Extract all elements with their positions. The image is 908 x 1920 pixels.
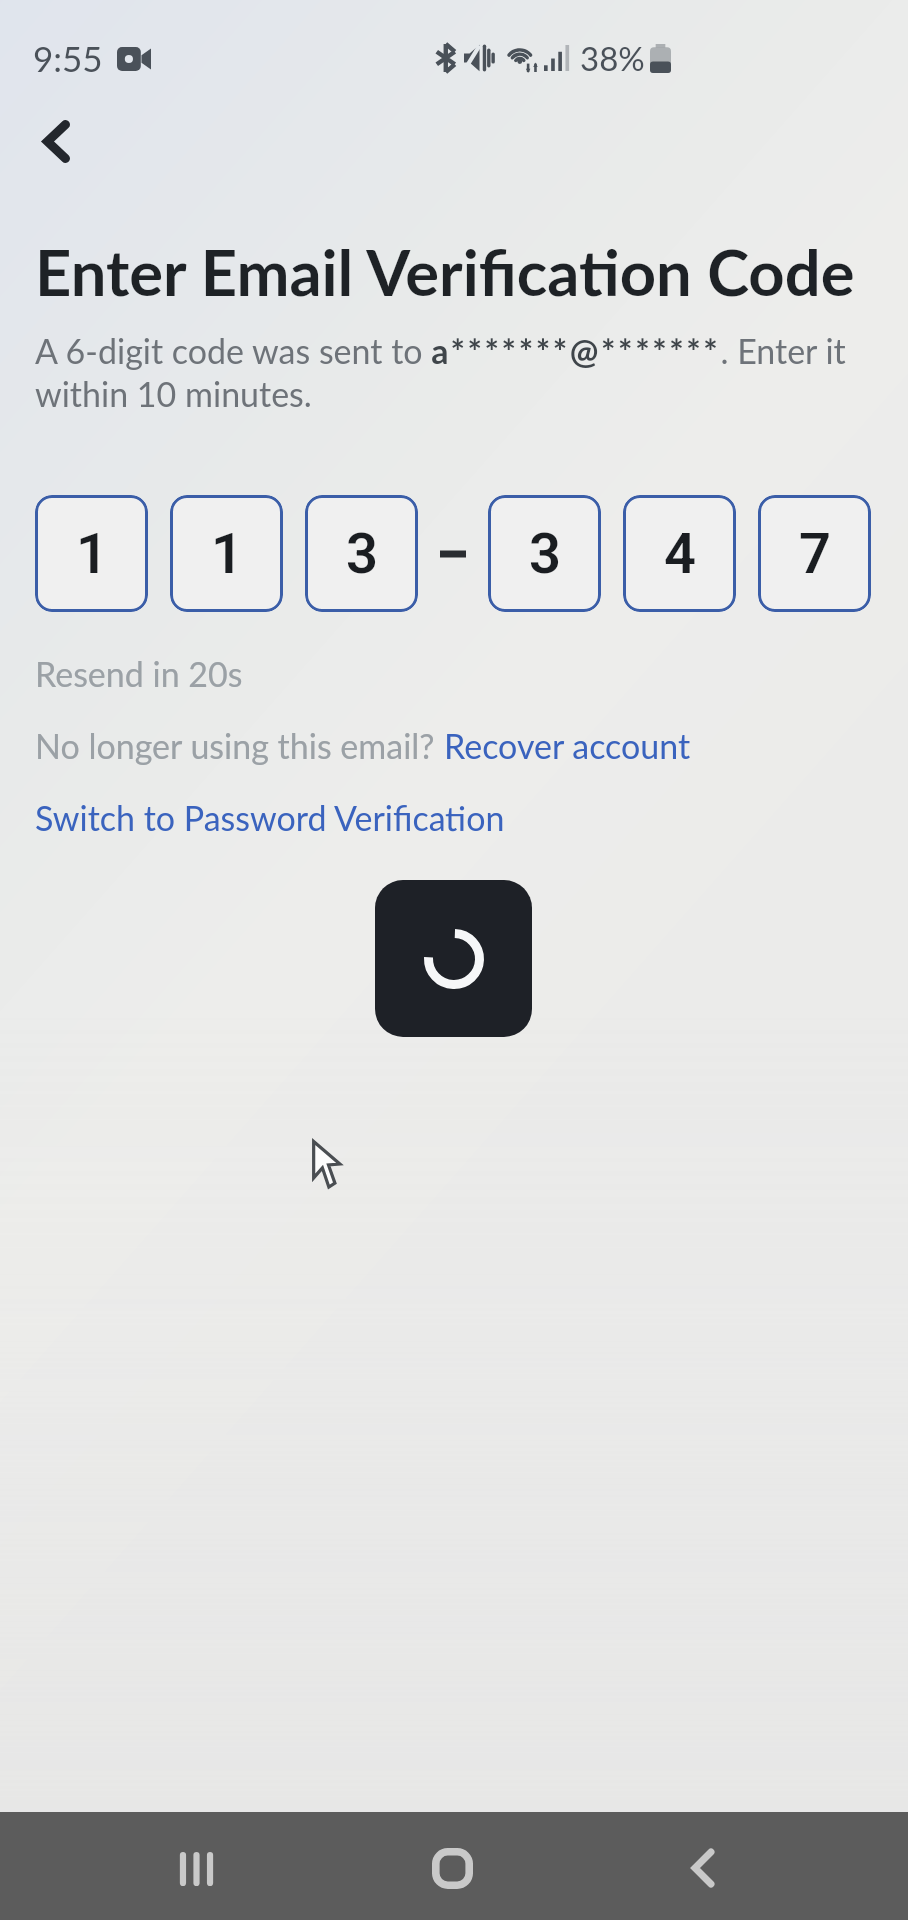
button[interactable]: 4 [623, 495, 736, 612]
button[interactable]: 7 [758, 495, 871, 612]
button[interactable]: 1 [170, 495, 283, 612]
staticText: A 6-digit code was sent to a*******@****… [35, 330, 875, 414]
staticText: Resend in 20s [35, 653, 243, 694]
button[interactable]: Home [397, 1814, 507, 1920]
staticText: 38% [580, 38, 645, 78]
button[interactable]: Back [20, 105, 92, 177]
staticText: Switch to Password Verification [35, 797, 505, 838]
staticText: 4 [664, 521, 696, 587]
staticText: Recover account [444, 725, 691, 766]
button[interactable]: Recents [141, 1815, 251, 1920]
staticText: 3 [346, 521, 378, 587]
staticText: 3 [529, 521, 561, 587]
button[interactable]: Back [648, 1814, 758, 1920]
button[interactable]: Switch to Password Verification [35, 797, 505, 838]
button[interactable]: 1 [35, 495, 148, 612]
staticText: 7 [799, 521, 831, 587]
staticText: 9:55 [33, 37, 103, 79]
button[interactable]: 3 [488, 495, 601, 612]
staticText: 1 [211, 521, 243, 587]
staticText: 1 [76, 521, 108, 587]
staticText: No longer using this email? [35, 725, 444, 766]
button[interactable]: Recover account [444, 725, 691, 766]
staticText: Enter Email Verification Code [35, 234, 855, 310]
button[interactable]: 3 [305, 495, 418, 612]
button[interactable]: Verify [375, 880, 532, 1037]
